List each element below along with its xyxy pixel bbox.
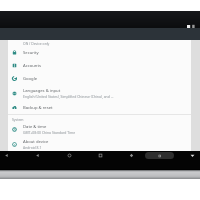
staticText: Security bbox=[23, 50, 39, 56]
button[interactable]: Rotate screen bbox=[129, 153, 134, 158]
staticText: System bbox=[12, 117, 24, 122]
staticText: Accounts bbox=[23, 63, 41, 69]
button[interactable]: Date & time bbox=[8, 122, 191, 137]
button[interactable]: Languages & input bbox=[8, 86, 191, 101]
staticText: Google bbox=[23, 76, 38, 82]
staticText: GMT+08:00 China Standard Time bbox=[23, 130, 76, 135]
button[interactable]: Back bbox=[35, 153, 40, 158]
staticText: Android 8.1 bbox=[23, 145, 42, 150]
button[interactable]: Backup & reset bbox=[8, 101, 191, 114]
button[interactable]: Keyboard bbox=[145, 152, 174, 159]
button[interactable]: Back bbox=[4, 153, 9, 158]
staticText: About device bbox=[23, 139, 49, 145]
button[interactable]: Home bbox=[67, 153, 72, 158]
staticText: Languages & input bbox=[23, 88, 61, 94]
button[interactable]: Hide navigation bar bbox=[190, 153, 195, 158]
staticText: Date & time bbox=[23, 124, 47, 130]
button[interactable]: Accounts bbox=[8, 59, 191, 72]
staticText: English (United States), Simplified Chin… bbox=[23, 94, 114, 99]
staticText: ON / Device only bbox=[23, 41, 50, 46]
button[interactable]: Google bbox=[8, 72, 191, 85]
button[interactable]: Recent apps bbox=[98, 153, 103, 158]
button[interactable]: Security bbox=[8, 46, 191, 59]
staticText: Backup & reset bbox=[23, 105, 53, 111]
button[interactable]: About device bbox=[8, 137, 191, 152]
